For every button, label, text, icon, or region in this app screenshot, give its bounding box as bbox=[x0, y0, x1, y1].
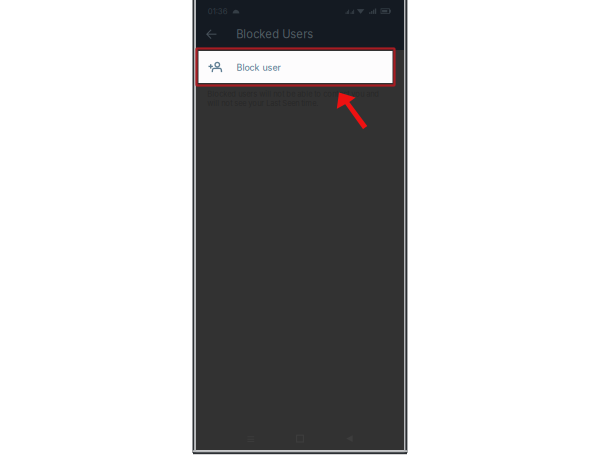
button[interactable]: Home bbox=[288, 427, 312, 451]
staticText: Blocked Users bbox=[236, 27, 313, 41]
button[interactable]: Back bbox=[199, 21, 225, 47]
staticText: Block user bbox=[236, 62, 280, 73]
button[interactable]: Block user bbox=[198, 51, 392, 83]
button[interactable]: Recent apps bbox=[239, 427, 263, 451]
staticText: Blocked users will not be able to contac… bbox=[207, 89, 379, 108]
button[interactable]: Back bbox=[337, 427, 361, 451]
staticText: 01:36 bbox=[208, 7, 228, 16]
